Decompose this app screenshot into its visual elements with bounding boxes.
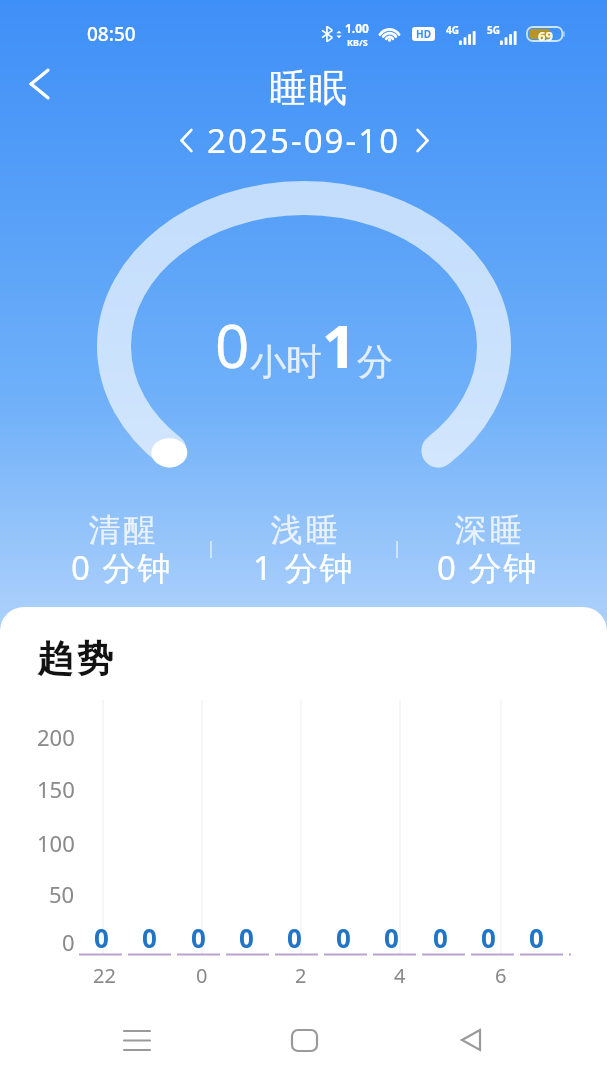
staticText: 22 bbox=[93, 962, 116, 988]
staticText: 0 bbox=[336, 920, 351, 948]
staticText: 趋势 bbox=[35, 636, 115, 681]
staticText: 分 bbox=[357, 339, 393, 384]
staticText: 100 bbox=[37, 828, 75, 856]
staticText: 0 bbox=[481, 920, 496, 948]
button[interactable]: Previous day bbox=[165, 118, 207, 162]
staticText: 0 bbox=[196, 962, 208, 988]
staticText: 0 bbox=[384, 920, 399, 948]
button[interactable]: Back bbox=[16, 61, 62, 107]
staticText: 50 bbox=[49, 879, 75, 907]
staticText: 1.00 bbox=[345, 20, 369, 36]
staticText: 浅睡 bbox=[269, 510, 339, 550]
staticText: 150 bbox=[37, 774, 75, 802]
staticText: 0 分钟 bbox=[437, 545, 539, 590]
staticText: 0 分钟 bbox=[71, 545, 173, 590]
staticText: 小时 bbox=[250, 339, 322, 384]
button[interactable]: 深睡 bbox=[398, 508, 578, 590]
staticText: 6 bbox=[495, 962, 507, 988]
button[interactable]: Recent apps bbox=[107, 1010, 167, 1070]
staticText: 2025-09-10 bbox=[207, 118, 401, 162]
staticText: KB/S bbox=[347, 36, 368, 48]
button[interactable]: Home bbox=[274, 1010, 334, 1070]
staticText: 0 bbox=[239, 920, 254, 948]
staticText: HD bbox=[416, 27, 431, 41]
button[interactable]: 浅睡 bbox=[214, 508, 394, 590]
staticText: 4G bbox=[446, 23, 459, 37]
staticText: 5G bbox=[487, 23, 500, 37]
button[interactable]: 清醒 bbox=[32, 508, 212, 590]
staticText: 69 bbox=[538, 27, 553, 41]
staticText: 睡眠 bbox=[268, 64, 348, 112]
staticText: 清醒 bbox=[87, 510, 157, 550]
staticText: 1 分钟 bbox=[253, 545, 355, 590]
staticText: 0 bbox=[529, 920, 544, 948]
staticText: 1 bbox=[322, 304, 357, 386]
staticText: 08:50 bbox=[87, 21, 136, 47]
staticText: 200 bbox=[37, 722, 75, 750]
staticText: 0 bbox=[215, 304, 250, 386]
staticText: 4 bbox=[394, 962, 406, 988]
staticText: 0 bbox=[433, 920, 448, 948]
staticText: 0 bbox=[62, 927, 75, 955]
staticText: 0 bbox=[287, 920, 302, 948]
staticText: 0 bbox=[142, 920, 157, 948]
staticText: 0 bbox=[191, 920, 206, 948]
button[interactable]: Back bbox=[440, 1010, 500, 1070]
button[interactable]: Next day bbox=[401, 118, 443, 162]
staticText: 0 bbox=[94, 920, 109, 948]
staticText: 2 bbox=[295, 962, 307, 988]
staticText: 深睡 bbox=[453, 510, 523, 550]
